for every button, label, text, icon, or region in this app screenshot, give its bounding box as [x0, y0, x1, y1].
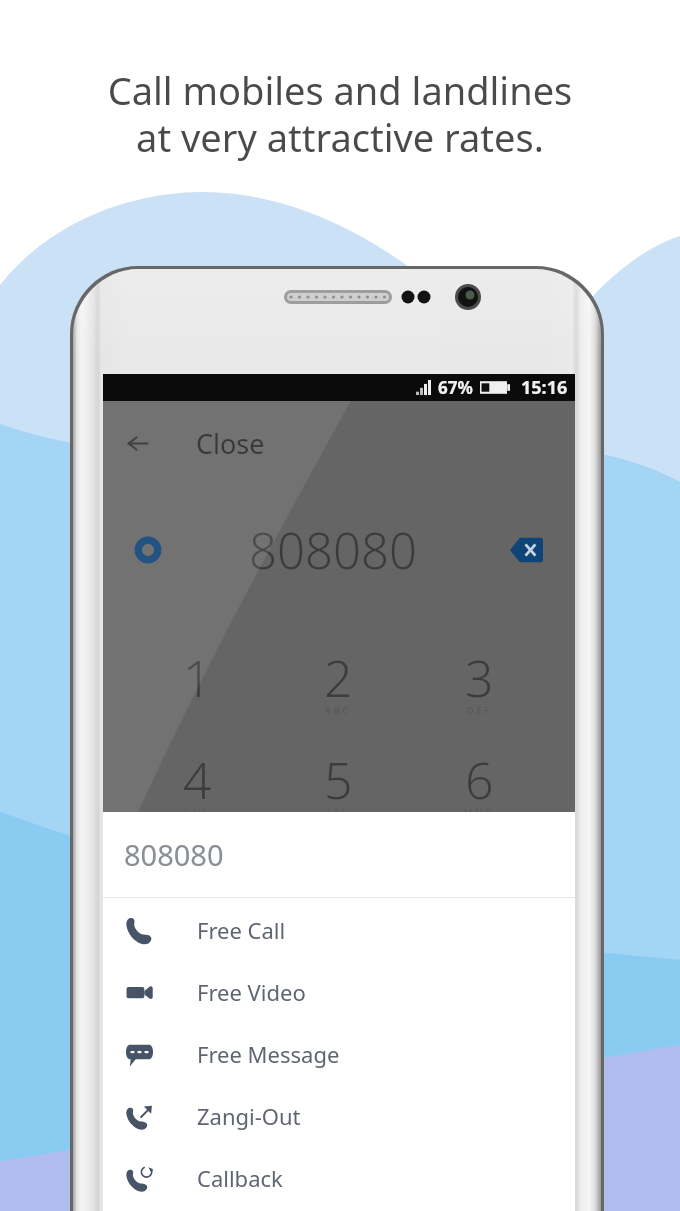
staticText: 3	[465, 644, 494, 712]
staticText: JKL	[328, 806, 350, 818]
staticText: 5	[324, 746, 353, 814]
button[interactable]: 1	[126, 633, 268, 735]
button[interactable]: 2	[268, 633, 409, 735]
staticText: 15:16	[521, 375, 568, 400]
staticText: ABC	[325, 704, 352, 716]
staticText: 4	[183, 746, 212, 814]
button[interactable]: Free Message	[103, 1023, 575, 1085]
other: Back	[127, 434, 148, 453]
button[interactable]: Free Video	[103, 961, 575, 1023]
staticText: 808080	[124, 835, 224, 874]
button[interactable]: Callback	[103, 1147, 575, 1209]
button[interactable]: 5	[268, 735, 409, 837]
button[interactable]: Back	[103, 401, 575, 485]
staticText: 6	[465, 746, 494, 814]
staticText: Callback	[197, 1163, 283, 1193]
staticText: 808080	[249, 517, 417, 584]
button[interactable]: 3	[409, 633, 550, 735]
button[interactable]: 4	[126, 735, 268, 837]
staticText: 1	[183, 644, 212, 712]
staticText: GHI	[184, 806, 210, 818]
staticText: Close	[196, 425, 265, 462]
staticText: Call mobiles and landlines at very attra…	[0, 64, 680, 163]
staticText: 67%	[438, 376, 473, 399]
staticText: MNO	[464, 806, 496, 818]
button[interactable]: Add contact	[134, 536, 162, 564]
staticText: 2	[324, 644, 353, 712]
button[interactable]: Backspace	[509, 536, 543, 564]
button[interactable]: 6	[409, 735, 550, 837]
button[interactable]: Free Call	[103, 899, 575, 961]
staticText: DEF	[467, 704, 493, 716]
button[interactable]: Zangi-Out	[103, 1085, 575, 1147]
staticText: Free Call	[197, 915, 286, 945]
staticText: Zangi-Out	[197, 1101, 301, 1131]
staticText: Free Message	[197, 1039, 340, 1069]
staticText: Free Video	[197, 977, 306, 1007]
